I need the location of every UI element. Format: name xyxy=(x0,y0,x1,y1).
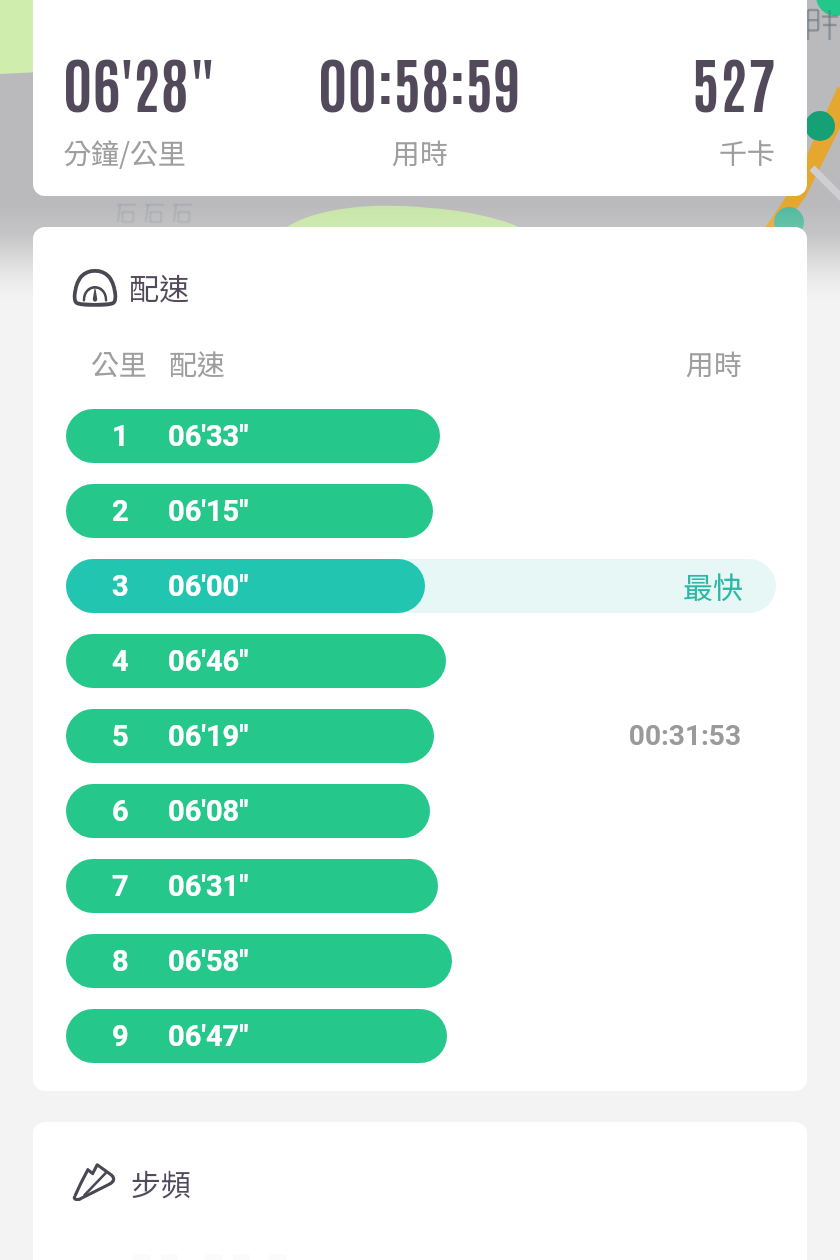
button[interactable]: 7 xyxy=(33,848,807,923)
staticText: 06'31" xyxy=(168,869,249,903)
staticText: 4 xyxy=(112,644,129,678)
staticText: 06'58" xyxy=(168,944,249,978)
button[interactable]: 6 xyxy=(33,773,807,848)
button[interactable]: 5 xyxy=(33,698,807,773)
staticText: 06'19" xyxy=(168,719,249,753)
staticText: 9 xyxy=(112,1019,129,1053)
staticText: 千卡 xyxy=(719,132,776,173)
staticText: 00:31:53 xyxy=(33,719,741,752)
staticText: 配速 xyxy=(169,343,226,384)
staticText: 527 xyxy=(692,43,776,121)
other: Cadence xyxy=(72,1160,120,1204)
staticText: 1 xyxy=(112,419,129,453)
button[interactable]: 1 xyxy=(33,398,807,473)
staticText: 7 xyxy=(112,869,129,903)
other: Pace xyxy=(72,267,118,307)
staticText: 步頻 xyxy=(131,1161,191,1204)
staticText: 用時 xyxy=(392,132,449,173)
staticText: 3 xyxy=(112,569,129,603)
staticText: 06'47" xyxy=(168,1019,249,1053)
button[interactable]: Cadence xyxy=(33,1152,807,1212)
button[interactable]: 4 xyxy=(33,623,807,698)
staticText: 用時 xyxy=(686,343,743,384)
staticText: 00:58:59 xyxy=(318,43,522,121)
button[interactable]: 8 xyxy=(33,923,807,998)
staticText: 6 xyxy=(112,794,129,828)
button[interactable]: 3 xyxy=(33,548,807,623)
staticText: 最快 xyxy=(33,564,743,607)
button[interactable]: Pace xyxy=(33,257,807,316)
button[interactable]: 9 xyxy=(33,998,807,1073)
staticText: 2 xyxy=(112,494,129,528)
staticText: 06'15" xyxy=(168,494,249,528)
staticText: 06'28" xyxy=(63,43,217,121)
staticText: 8 xyxy=(112,944,129,978)
staticText: 06'08" xyxy=(168,794,249,828)
button[interactable]: 2 xyxy=(33,473,807,548)
staticText: 06'33" xyxy=(168,419,249,453)
staticText: 06'46" xyxy=(168,644,249,678)
staticText: 5 xyxy=(112,719,129,753)
staticText: 分鐘/公里 xyxy=(63,132,186,173)
staticText: 06'00" xyxy=(168,569,249,603)
staticText: 配速 xyxy=(129,265,189,308)
staticText: 公里 xyxy=(91,343,148,384)
